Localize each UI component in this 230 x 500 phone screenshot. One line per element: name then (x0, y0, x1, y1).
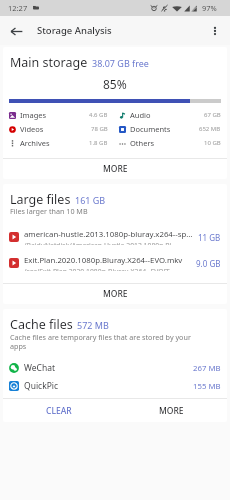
button[interactable]: MORE (115, 399, 227, 422)
staticText: Storage Analysis (37, 24, 112, 37)
staticText: 85% (103, 76, 127, 92)
staticText: 652 MB (199, 125, 221, 133)
button[interactable]: Others (119, 136, 221, 150)
staticText: Cache files are temporary files that are… (10, 332, 205, 351)
button[interactable]: Archives (9, 136, 108, 150)
staticText: Images (20, 110, 47, 120)
staticText: 161 GB (75, 194, 106, 206)
staticText: 1.8 GB (89, 139, 108, 147)
staticText: 155 MB (193, 381, 221, 392)
staticText: 267 MB (193, 363, 221, 374)
button[interactable]: Videos (9, 122, 108, 136)
staticText: Main storage (10, 54, 88, 71)
button[interactable]: CLEAR (3, 399, 115, 422)
staticText: 12:27 (8, 3, 28, 13)
button[interactable]: Exit.Plan.2020.1080p.Bluray.X264--EVO.mk… (9, 255, 221, 271)
staticText: MORE (103, 288, 128, 300)
staticText: 38.07 GB free (92, 57, 149, 69)
staticText: CLEAR (46, 405, 72, 417)
button[interactable]: Documents (119, 122, 221, 136)
button[interactable]: american-hustle.2013.1080p-bluray.x264--… (9, 229, 221, 245)
staticText: QuickPic (24, 380, 59, 392)
staticText: WeChat (24, 362, 55, 374)
button[interactable]: Back (4, 19, 28, 43)
staticText: /BaiduNetdisk/American.Hustle.2013.1080p… (24, 241, 177, 245)
staticText: 10 GB (204, 139, 221, 147)
staticText: 4.6 GB (89, 111, 108, 119)
staticText: Others (130, 138, 155, 148)
staticText: Exit.Plan.2020.1080p.Bluray.X264--EVO.mk… (24, 255, 183, 266)
staticText: 11 GB (198, 232, 221, 243)
button[interactable]: MORE (3, 284, 227, 304)
staticText: Cache files (10, 316, 73, 333)
staticText: 78 GB (91, 125, 108, 133)
staticText: Documents (130, 124, 171, 134)
staticText: MORE (159, 405, 184, 417)
staticText: 9.0 GB (196, 258, 221, 269)
staticText: Files larger than 10 MB (10, 206, 88, 216)
button[interactable]: MORE (3, 159, 227, 179)
staticText: american-hustle.2013.1080p-bluray.x264--… (24, 229, 194, 240)
staticText: Large files (10, 191, 71, 208)
staticText: 572 MB (77, 319, 109, 331)
staticText: Archives (20, 138, 50, 148)
button[interactable]: WeChat (9, 359, 221, 377)
button[interactable]: More options (203, 19, 227, 43)
button[interactable]: Images (9, 108, 108, 122)
staticText: MORE (103, 163, 128, 175)
button[interactable]: Audio (119, 108, 221, 122)
staticText: 97% (202, 3, 217, 13)
button[interactable]: QuickPic (9, 377, 221, 395)
staticText: /sor/Exit-Plan.2020.1080p-Bluray-X264--E… (24, 267, 175, 271)
staticText: Videos (20, 124, 44, 134)
staticText: Audio (130, 110, 151, 120)
staticText: 67 GB (204, 111, 221, 119)
